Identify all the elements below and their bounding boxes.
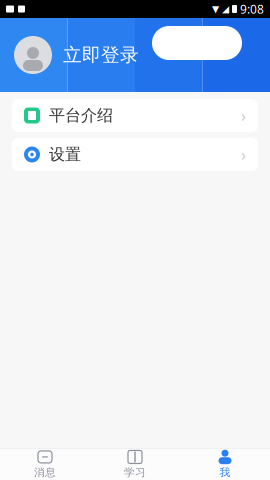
button[interactable]: 设置 xyxy=(12,138,258,171)
button[interactable]: 消息 xyxy=(0,449,90,480)
staticText: › xyxy=(241,105,246,126)
staticText: 我 xyxy=(219,466,230,479)
staticText: 学习 xyxy=(124,466,146,479)
button[interactable]: 学习 xyxy=(90,449,180,480)
button[interactable]: 平台介绍 xyxy=(12,99,258,132)
staticText: 平台介绍 xyxy=(49,106,113,125)
staticText: ◢ xyxy=(222,4,229,14)
staticText: 消息 xyxy=(34,466,56,479)
staticText: 9:08 xyxy=(240,1,264,17)
staticText: 立即登录 xyxy=(63,43,139,66)
staticText: ▼ xyxy=(212,4,219,14)
staticText: 设置 xyxy=(49,145,81,164)
button[interactable]: 我 xyxy=(180,449,270,480)
button[interactable]: 立即登录 xyxy=(63,43,139,66)
staticText: › xyxy=(241,144,246,165)
